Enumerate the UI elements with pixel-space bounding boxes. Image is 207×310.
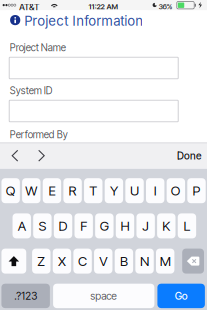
button[interactable]: X bbox=[53, 249, 71, 274]
staticText: R bbox=[69, 183, 77, 199]
staticText: Done bbox=[177, 150, 202, 162]
staticText: Go bbox=[175, 290, 188, 302]
button[interactable]: G bbox=[95, 213, 113, 238]
staticText: Z bbox=[37, 253, 45, 269]
button[interactable]: D bbox=[54, 213, 72, 238]
button[interactable]: P bbox=[187, 178, 206, 203]
button[interactable]: V bbox=[94, 249, 112, 274]
button[interactable]: Next field bbox=[30, 143, 53, 168]
button[interactable]: S bbox=[33, 213, 52, 238]
staticText: space bbox=[90, 290, 117, 302]
staticText: System ID bbox=[10, 85, 53, 96]
staticText: B bbox=[120, 253, 128, 269]
staticText: S bbox=[38, 218, 46, 234]
button[interactable]: Project Name text field bbox=[9, 57, 178, 79]
staticText: Project Name bbox=[10, 42, 66, 53]
staticText: W bbox=[25, 183, 37, 199]
staticText: L bbox=[183, 218, 190, 234]
staticText: T bbox=[89, 183, 97, 199]
staticText: K bbox=[162, 218, 170, 234]
staticText: G bbox=[100, 218, 109, 234]
button[interactable]: T bbox=[84, 178, 102, 203]
button[interactable]: A bbox=[13, 213, 31, 238]
staticText: F bbox=[80, 218, 87, 234]
staticText: A bbox=[18, 218, 26, 234]
staticText: P bbox=[192, 183, 200, 199]
button[interactable]: Go bbox=[157, 284, 205, 308]
button[interactable]: B bbox=[115, 249, 133, 274]
staticText: 11:22 AM bbox=[88, 2, 118, 11]
button[interactable]: U bbox=[125, 178, 144, 203]
button[interactable]: J bbox=[136, 213, 155, 238]
staticText: J bbox=[142, 218, 149, 234]
staticText: Performed By bbox=[10, 129, 68, 140]
staticText: H bbox=[120, 218, 129, 234]
button[interactable]: E bbox=[43, 178, 61, 203]
staticText: U bbox=[130, 183, 139, 199]
staticText: E bbox=[48, 183, 55, 199]
button[interactable]: Y bbox=[105, 178, 123, 203]
button[interactable]: System ID text field bbox=[9, 100, 178, 122]
staticText: N bbox=[140, 253, 149, 269]
button[interactable]: Done bbox=[171, 144, 207, 168]
staticText: AT&T bbox=[19, 2, 40, 13]
button[interactable]: Previous field bbox=[3, 143, 26, 168]
button[interactable]: H bbox=[116, 213, 134, 238]
button[interactable]: I bbox=[146, 178, 164, 203]
staticText: D bbox=[58, 218, 67, 234]
staticText: C bbox=[78, 253, 87, 269]
button[interactable]: R bbox=[63, 178, 82, 203]
button[interactable]: Z bbox=[32, 249, 50, 274]
button[interactable]: L bbox=[178, 213, 196, 238]
button[interactable]: Delete bbox=[182, 249, 204, 274]
button[interactable]: Project Information bbox=[6, 11, 148, 33]
staticText: .?123 bbox=[14, 290, 37, 302]
button[interactable]: F bbox=[74, 213, 93, 238]
staticText: Project Information bbox=[24, 13, 143, 29]
staticText: V bbox=[99, 253, 107, 269]
staticText: Y bbox=[110, 183, 118, 199]
staticText: I bbox=[154, 183, 157, 199]
button[interactable]: Shift bbox=[1, 249, 26, 274]
button[interactable]: Q bbox=[1, 178, 20, 203]
button[interactable]: M bbox=[156, 249, 174, 274]
button[interactable]: W bbox=[22, 178, 40, 203]
button[interactable]: K bbox=[157, 213, 175, 238]
button[interactable]: Numbers and symbols bbox=[1, 284, 50, 308]
button[interactable]: C bbox=[73, 249, 92, 274]
staticText: M bbox=[160, 253, 171, 269]
staticText: O bbox=[171, 183, 181, 199]
button[interactable]: N bbox=[135, 249, 154, 274]
button[interactable]: Space bbox=[53, 284, 154, 308]
staticText: X bbox=[58, 253, 66, 269]
staticText: Q bbox=[6, 183, 16, 199]
staticText: 36% bbox=[159, 2, 173, 11]
button[interactable]: O bbox=[167, 178, 185, 203]
